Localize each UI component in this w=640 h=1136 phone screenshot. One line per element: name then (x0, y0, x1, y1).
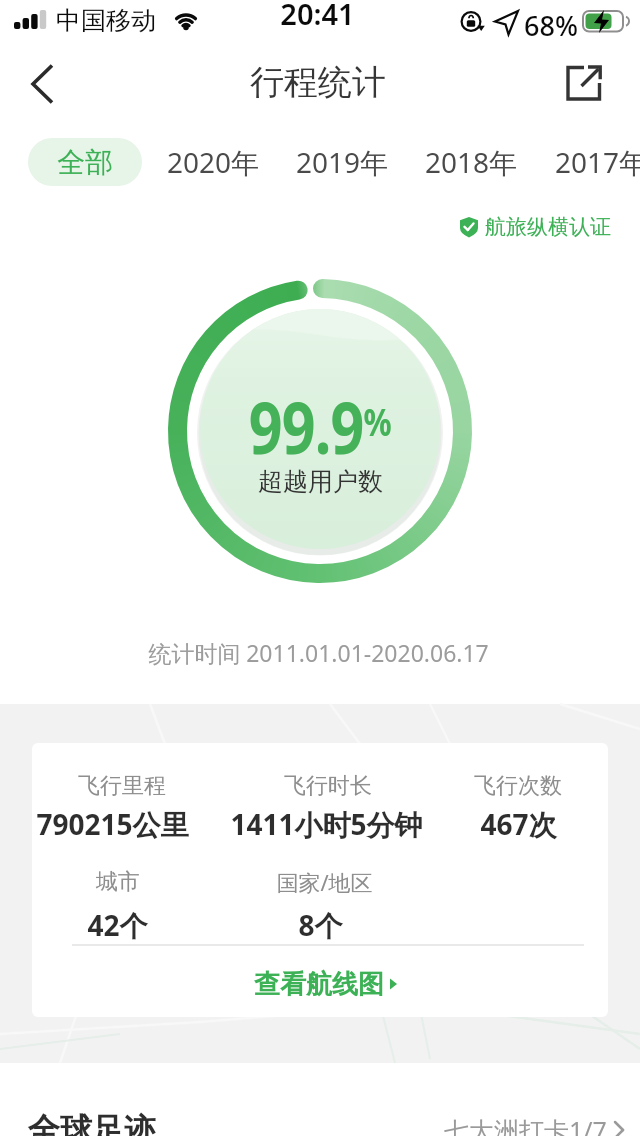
staticText: 飞行里程 (78, 772, 166, 800)
staticText: 2018年 (425, 143, 518, 181)
staticText: 超越用户数 (258, 466, 383, 497)
button[interactable] (560, 58, 612, 104)
staticText: 42个 (87, 906, 148, 944)
staticText: 790215公里 (36, 805, 189, 843)
button[interactable]: 七大洲打卡1/7 (444, 1110, 629, 1136)
button[interactable] (32, 743, 608, 1017)
staticText: 七大洲打卡1/7 (444, 1113, 607, 1136)
staticText: 飞行时长 (284, 772, 372, 800)
staticText: 全球足迹 (28, 1110, 156, 1136)
staticText: 68% (524, 7, 578, 44)
button[interactable]: 2018年 (401, 138, 541, 186)
staticText: 统计时间 2011.01.01-2020.06.17 (148, 637, 489, 668)
staticText: 2020年 (167, 143, 260, 181)
staticText: 2017年 (555, 143, 640, 181)
staticText: 1411小时5分钟 (230, 805, 423, 843)
staticText: 20:41 (280, 0, 355, 33)
button[interactable] (14, 61, 66, 113)
button[interactable]: 航旅纵横认证 (458, 208, 611, 246)
staticText: 查看航线图 (254, 968, 384, 1001)
button[interactable]: 2019年 (272, 138, 412, 186)
staticText: 国家/地区 (276, 867, 373, 897)
staticText: % (363, 395, 392, 447)
button[interactable]: 全部 (28, 138, 142, 186)
staticText: 飞行次数 (474, 772, 562, 800)
staticText: 8个 (298, 906, 343, 944)
staticText: 467次 (480, 805, 557, 843)
staticText: 行程统计 (250, 61, 386, 104)
button[interactable]: 2017年 (531, 138, 640, 186)
staticText: 99.9 (249, 377, 364, 455)
staticText: 航旅纵横认证 (485, 214, 611, 240)
button[interactable]: 2020年 (143, 138, 283, 186)
button[interactable]: 查看航线图 (254, 962, 400, 1006)
staticText: 2019年 (296, 143, 389, 181)
staticText: 中国移动 (56, 5, 156, 36)
staticText: 全部 (57, 145, 113, 180)
staticText: 城市 (96, 868, 140, 896)
